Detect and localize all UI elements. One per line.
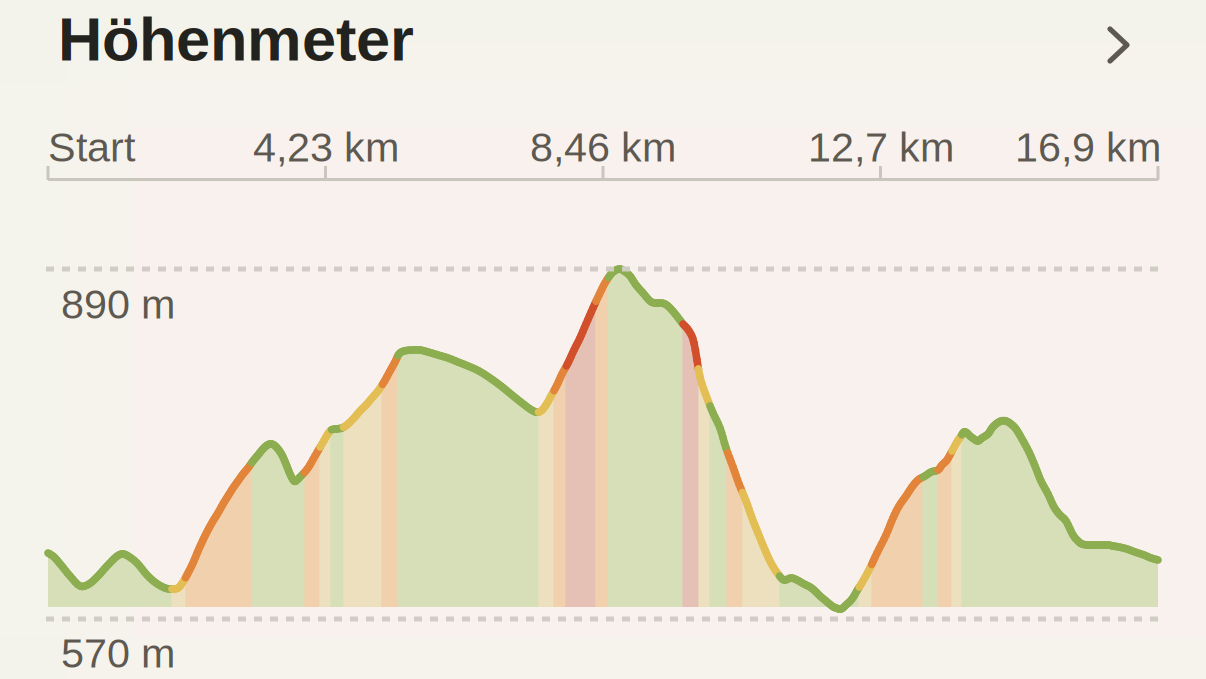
staticText: 4,23 km xyxy=(253,124,399,170)
button[interactable]: Details anzeigen xyxy=(1090,17,1146,73)
staticText: 16,9 km xyxy=(1015,124,1161,170)
staticText: Start xyxy=(48,124,135,170)
staticText: Höhenmeter xyxy=(58,5,414,73)
staticText: 890 m xyxy=(61,281,175,327)
staticText: 12,7 km xyxy=(808,124,954,170)
staticText: 570 m xyxy=(61,630,175,676)
staticText: 8,46 km xyxy=(530,124,676,170)
